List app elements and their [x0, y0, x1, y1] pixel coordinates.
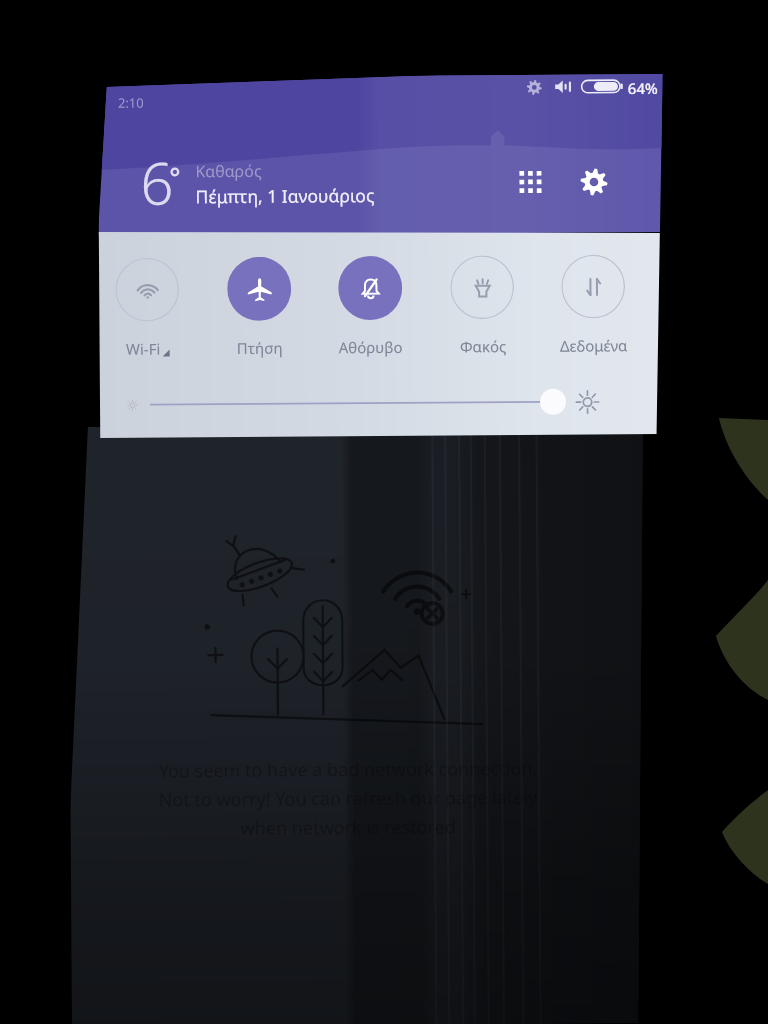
- staticText: Αθόρυβο: [339, 337, 403, 357]
- staticText: Καθαρός: [195, 160, 262, 182]
- button[interactable]: 2:10: [98, 74, 664, 236]
- button[interactable]: You seem to have a bad network connectio…: [68, 423, 654, 1024]
- staticText: Φακός: [459, 336, 507, 356]
- staticText: You seem to have a bad network connectio…: [148, 756, 547, 783]
- button[interactable]: Brightness: [99, 228, 665, 438]
- staticText: Not to worry! You can refresh our page l…: [148, 785, 548, 812]
- button[interactable]: Πτήση: [205, 256, 314, 358]
- staticText: 6: [140, 142, 175, 222]
- button[interactable]: Φακός: [428, 255, 537, 357]
- staticText: Wi-Fi: [126, 338, 161, 359]
- button[interactable]: Edit tiles: [507, 159, 554, 205]
- button[interactable]: Αθόρυβο: [316, 256, 425, 357]
- button[interactable]: Wi-Fi: [99, 257, 202, 359]
- staticText: Πέμπτη, 1 Ιανουάριος: [195, 183, 375, 208]
- staticText: Δεδομένα: [559, 335, 628, 356]
- button[interactable]: Δεδομένα: [539, 254, 648, 356]
- staticText: Πτήση: [237, 338, 283, 358]
- staticText: 2:10: [118, 94, 144, 112]
- staticText: when network is restored: [149, 814, 548, 841]
- button[interactable]: Settings: [570, 158, 617, 205]
- staticText: 64%: [628, 78, 658, 94]
